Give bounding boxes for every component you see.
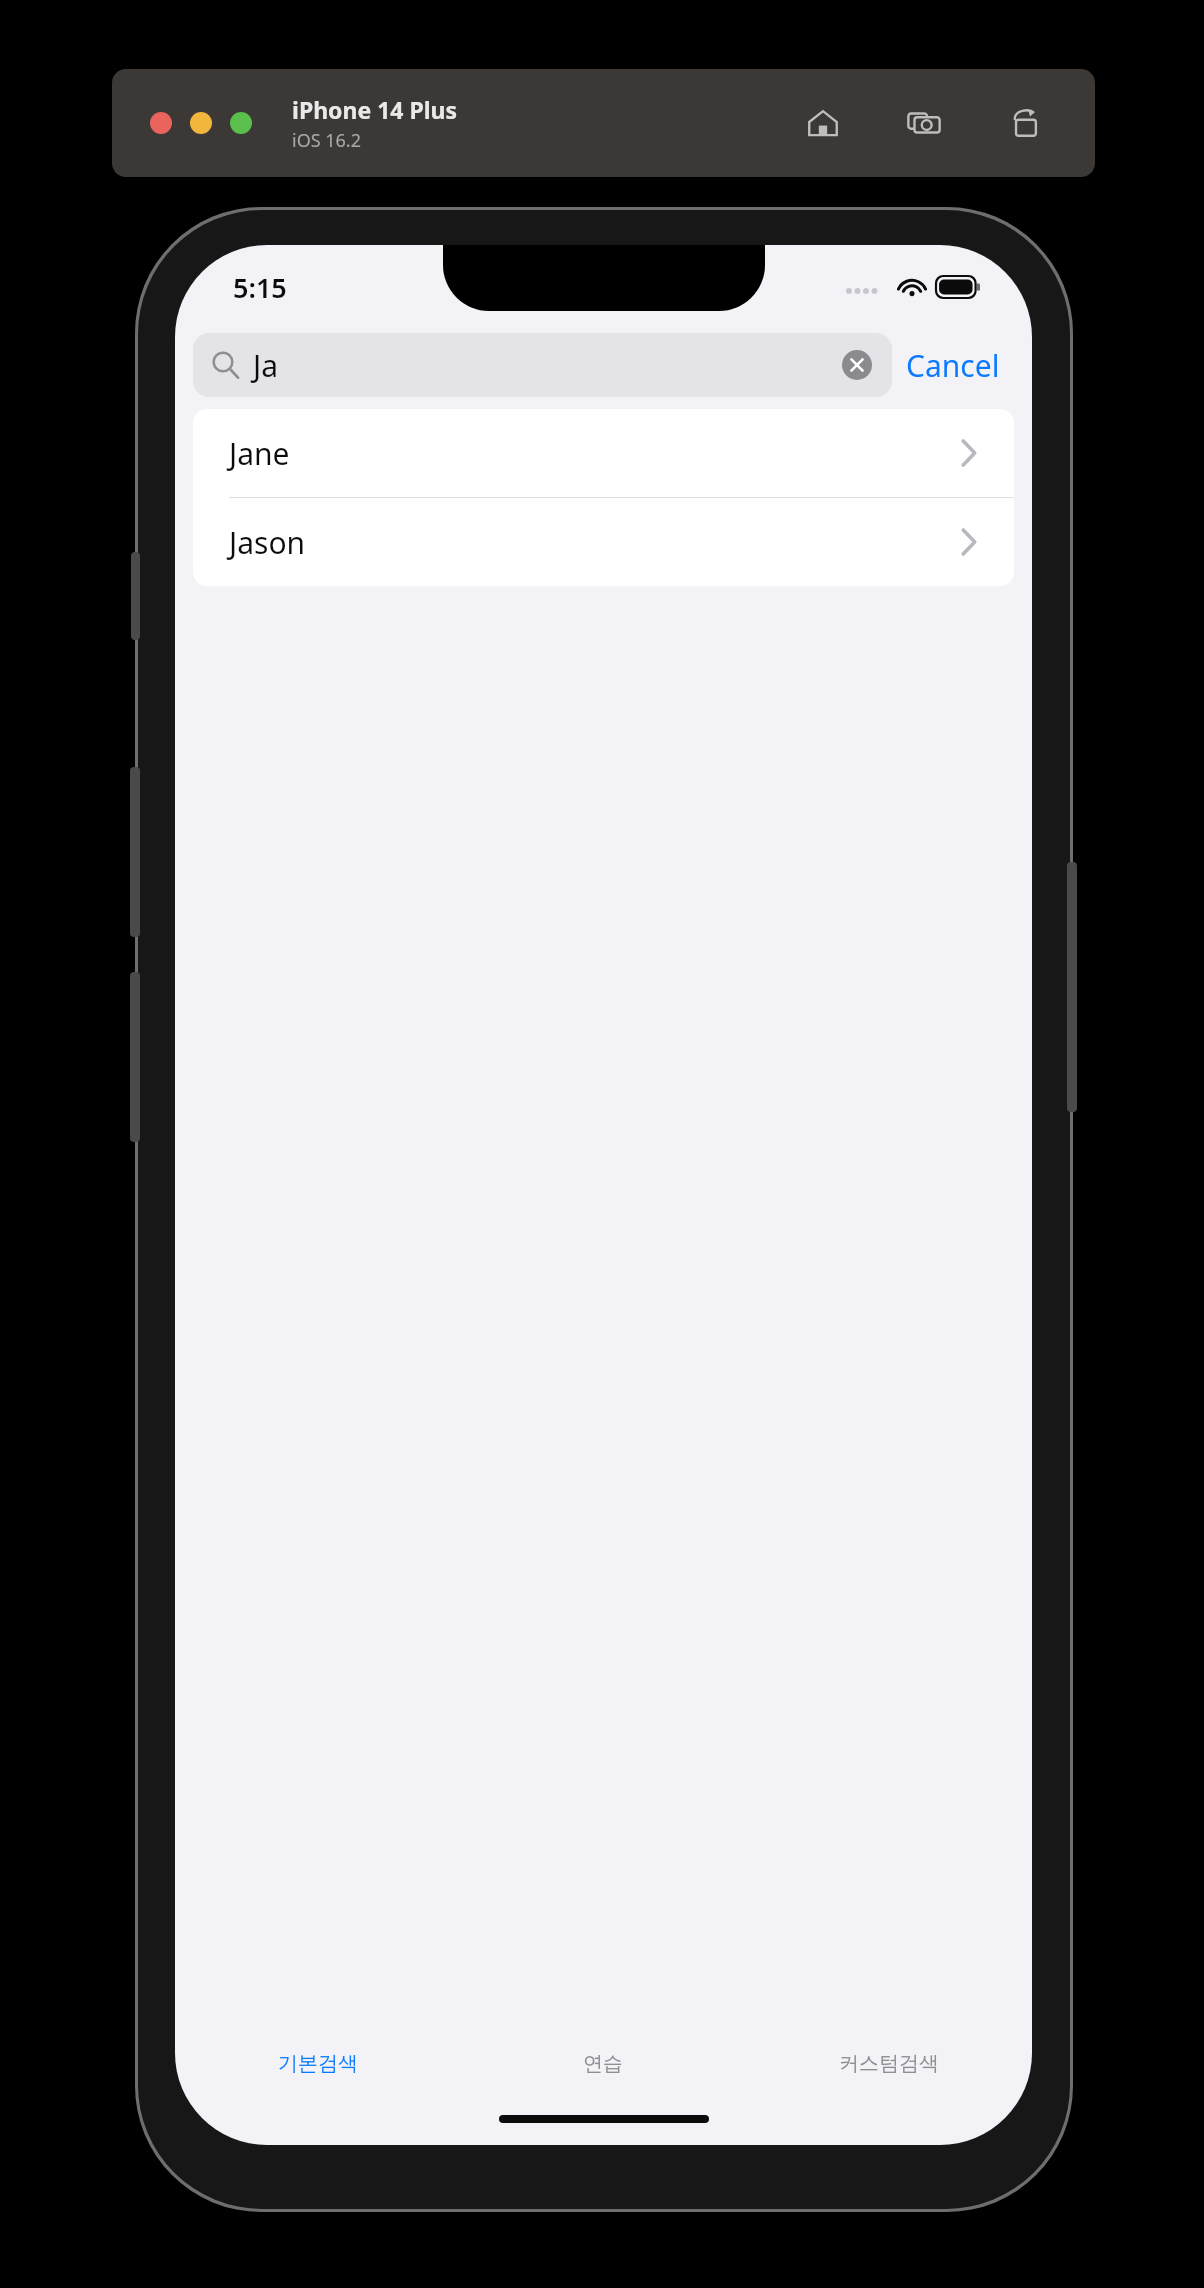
staticText: Cancel	[906, 345, 1000, 386]
button[interactable]: Jane	[193, 409, 1014, 497]
button[interactable]	[230, 112, 252, 134]
staticText: 연습	[583, 2051, 623, 2076]
button[interactable]: Home	[801, 101, 845, 145]
button[interactable]: Clear text	[840, 348, 874, 382]
button[interactable]	[150, 112, 172, 134]
button[interactable]	[190, 112, 212, 134]
staticText: 기본검색	[278, 2051, 358, 2076]
button[interactable]: Rotate	[1003, 101, 1047, 145]
button[interactable]: Jason	[193, 498, 1014, 586]
button[interactable]: 커스텀검색	[746, 2041, 1032, 2145]
staticText: Ja	[253, 345, 279, 386]
button[interactable]: 기본검색	[175, 2041, 460, 2145]
staticText: Jane	[229, 433, 290, 474]
button[interactable]: Ja	[193, 333, 892, 397]
button[interactable]: Screenshot	[902, 101, 946, 145]
staticText: iPhone 14 Plus	[292, 94, 458, 125]
staticText: iOS 16.2	[292, 128, 361, 153]
staticText: 커스텀검색	[839, 2051, 939, 2076]
staticText: 5:15	[233, 269, 287, 306]
button[interactable]: 연습	[460, 2041, 746, 2145]
button[interactable]: Cancel	[892, 335, 1014, 396]
staticText: Jason	[229, 522, 306, 563]
